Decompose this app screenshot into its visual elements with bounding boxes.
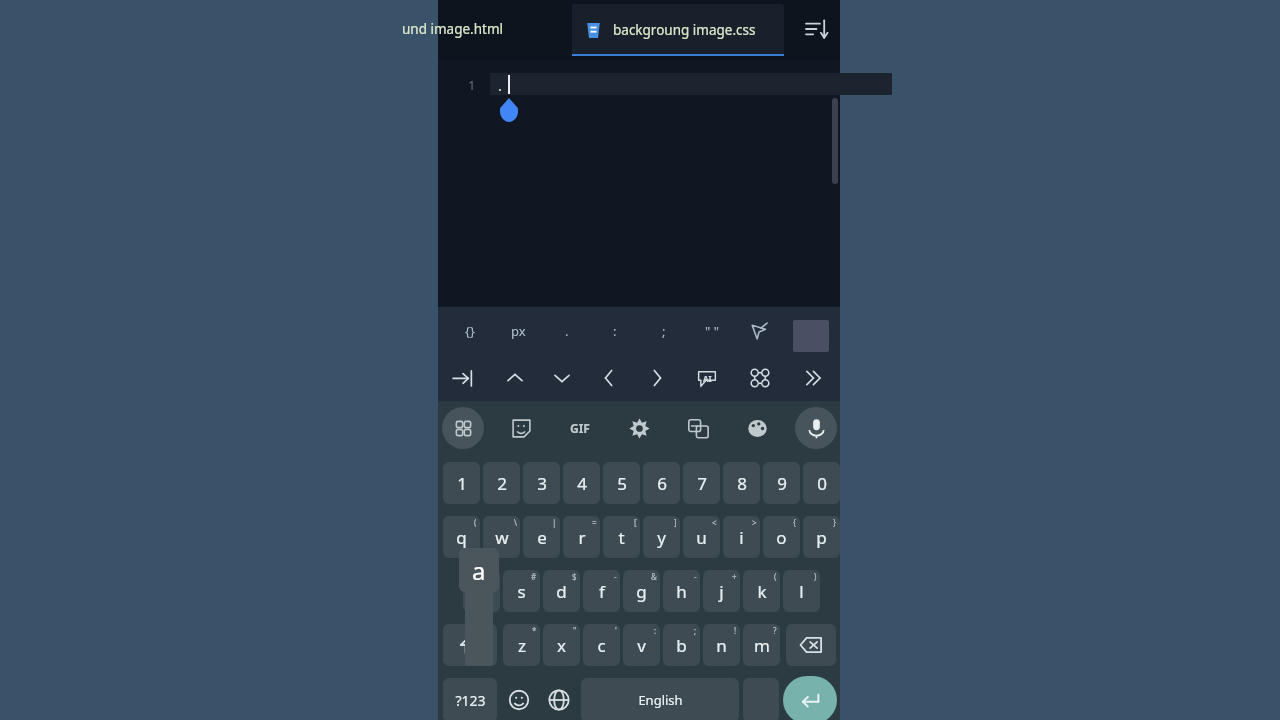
staticText: k <box>757 580 767 603</box>
staticText: 5 <box>617 472 627 495</box>
staticText: ) <box>814 571 817 582</box>
staticText: s <box>517 580 526 603</box>
button[interactable]: w <box>483 516 520 558</box>
button[interactable]: Backspace <box>786 624 836 666</box>
staticText: ! <box>734 625 737 636</box>
button[interactable]: u <box>683 516 720 558</box>
button[interactable]: 9 <box>763 462 800 504</box>
staticText: 4 <box>577 472 587 495</box>
staticText: 1 <box>468 76 476 94</box>
button[interactable]: Sort <box>794 0 840 58</box>
button[interactable]: Up <box>492 355 538 401</box>
button[interactable]: 6 <box>643 462 680 504</box>
staticText: h <box>676 580 687 603</box>
button[interactable]: g <box>623 570 660 612</box>
button[interactable]: f <box>583 570 620 612</box>
button[interactable]: Settings <box>618 407 660 449</box>
staticText: ] <box>674 517 677 528</box>
button[interactable]: c <box>583 624 620 666</box>
staticText: > <box>752 517 757 528</box>
button[interactable]: a <box>463 570 500 612</box>
staticText: u <box>696 526 707 549</box>
button[interactable]: i <box>723 516 760 558</box>
staticText: backgroung image.css <box>613 21 756 39</box>
button[interactable]: k <box>743 570 780 612</box>
staticText: w <box>495 526 509 549</box>
staticText: y <box>657 526 666 549</box>
button[interactable]: backgroung image.css <box>572 4 784 56</box>
staticText: $ <box>572 571 577 582</box>
button[interactable]: Down <box>539 355 585 401</box>
button[interactable]: x <box>543 624 580 666</box>
button[interactable]: Right <box>634 355 680 401</box>
other: Cursor handle <box>499 98 519 122</box>
button[interactable]: 8 <box>723 462 760 504</box>
button[interactable]: . <box>545 307 589 355</box>
button[interactable]: 5 <box>603 462 640 504</box>
button[interactable]: h <box>663 570 700 612</box>
button[interactable]: Voice input <box>795 407 837 449</box>
button[interactable]: ; <box>642 307 686 355</box>
button[interactable]: n <box>703 624 740 666</box>
button[interactable]: v <box>623 624 660 666</box>
staticText: o <box>776 526 787 549</box>
button[interactable]: 2 <box>483 462 520 504</box>
button[interactable]: 3 <box>523 462 560 504</box>
button[interactable]: e <box>523 516 560 558</box>
button[interactable]: 1 <box>443 462 480 504</box>
button[interactable]: d <box>543 570 580 612</box>
staticText: px <box>511 322 526 340</box>
staticText: 0 <box>817 472 827 495</box>
staticText: i <box>739 526 744 549</box>
button[interactable]: b <box>663 624 700 666</box>
button[interactable]: s <box>503 570 540 612</box>
staticText: 9 <box>777 472 787 495</box>
button[interactable]: 7 <box>683 462 720 504</box>
button[interactable]: t <box>603 516 640 558</box>
button[interactable]: m <box>743 624 780 666</box>
button[interactable]: More <box>790 355 836 401</box>
staticText: l <box>799 580 804 603</box>
staticText: a <box>472 554 486 587</box>
button[interactable]: Stickers <box>500 407 542 449</box>
button[interactable]: r <box>563 516 600 558</box>
staticText: j <box>719 580 724 603</box>
button[interactable]: 0 <box>803 462 840 504</box>
button[interactable]: ?123 <box>443 678 497 720</box>
staticText: m <box>754 634 770 657</box>
button[interactable]: l <box>783 570 820 612</box>
staticText: r <box>578 526 586 549</box>
button[interactable]: Emoji <box>501 678 537 720</box>
button[interactable]: z <box>503 624 540 666</box>
button[interactable]: o <box>763 516 800 558</box>
button[interactable]: Change language <box>541 678 577 720</box>
button[interactable]: Shift <box>443 624 497 666</box>
button[interactable]: y <box>643 516 680 558</box>
button[interactable]: j <box>703 570 740 612</box>
button[interactable]: und image.html <box>388 0 518 58</box>
button[interactable]: {} <box>448 307 492 355</box>
button[interactable]: " " <box>690 307 734 355</box>
button[interactable]: English <box>581 678 739 720</box>
button[interactable]: Select <box>737 307 781 355</box>
staticText: " <box>573 625 577 636</box>
button[interactable]: Left <box>586 355 632 401</box>
button[interactable]: : <box>593 307 637 355</box>
button[interactable]: 4 <box>563 462 600 504</box>
button[interactable]: q <box>443 516 480 558</box>
button[interactable]: Command <box>737 355 783 401</box>
button[interactable]: Translate <box>677 407 719 449</box>
button[interactable]: Themes <box>736 407 778 449</box>
staticText: - <box>694 571 697 582</box>
button[interactable]: Tab <box>440 355 486 401</box>
button[interactable]: a <box>459 548 499 592</box>
button[interactable]: Enter <box>783 676 837 720</box>
button[interactable]: AI <box>684 355 730 401</box>
button[interactable]: px <box>496 307 540 355</box>
button[interactable]: p <box>803 516 840 558</box>
button[interactable]: GIF <box>559 407 601 449</box>
button[interactable]: Apps <box>442 407 484 449</box>
